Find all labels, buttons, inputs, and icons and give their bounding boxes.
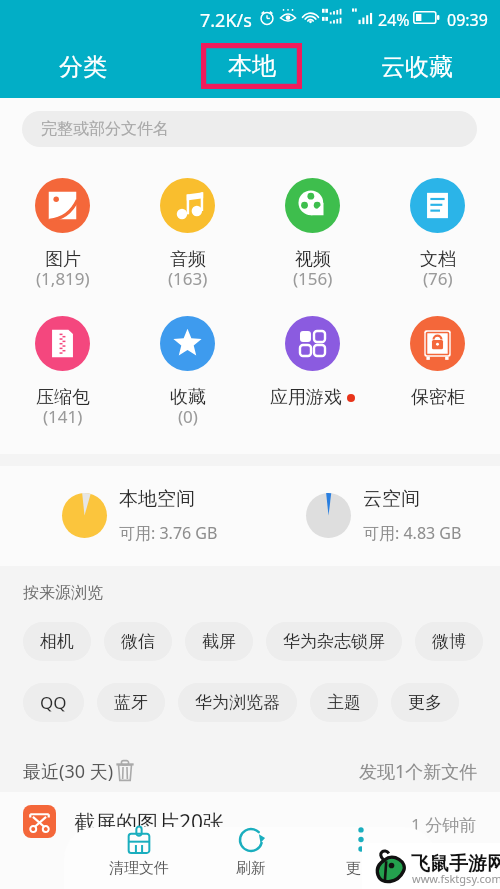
staticText: 更多 [346, 859, 376, 878]
staticText: 微信 [121, 631, 155, 652]
staticText: 本地空间 [119, 487, 195, 511]
staticText: 云空间 [363, 487, 420, 511]
staticText: www.fsktgsy.com [412, 871, 500, 886]
button[interactable]: 微信 [104, 622, 172, 661]
button[interactable]: 华为浏览器 [178, 683, 297, 722]
button[interactable]: QQ [23, 683, 84, 722]
staticText: 1 分钟前 [411, 813, 477, 836]
staticText: 云收藏 [381, 52, 453, 82]
button[interactable]: 华为杂志锁屏 [266, 622, 402, 661]
button[interactable]: 微博 [415, 622, 483, 661]
button[interactable]: 图片 [0, 178, 125, 294]
button[interactable]: 更多 [321, 826, 401, 889]
staticText: 视频 [295, 248, 331, 271]
button[interactable]: 应用游戏 [250, 316, 375, 409]
staticText: 分类 [59, 52, 107, 82]
staticText: 发现1个新文件 [359, 759, 478, 784]
staticText: 微博 [432, 631, 466, 652]
staticText: (141) [43, 405, 83, 428]
button[interactable]: 截屏 [185, 622, 253, 661]
staticText: 按来源浏览 [23, 583, 103, 603]
button[interactable]: 云收藏 [333, 36, 500, 98]
staticText: 可用: 4.83 GB [363, 522, 462, 544]
staticText: 截屏 [202, 631, 236, 652]
staticText: 主题 [327, 692, 361, 713]
staticText: 清理文件 [109, 859, 169, 878]
button[interactable]: 保密柜 [375, 316, 500, 409]
staticText: 完整或部分文件名 [41, 119, 169, 139]
staticText: 飞鼠手游网 [411, 852, 500, 876]
staticText: 华为杂志锁屏 [283, 631, 385, 652]
staticText: 09:39 [447, 9, 488, 31]
staticText: (163) [168, 267, 208, 290]
staticText: 更多 [408, 692, 442, 713]
button[interactable]: 主题 [310, 683, 378, 722]
staticText: 华为浏览器 [195, 692, 280, 713]
button[interactable]: 视频 [250, 178, 375, 294]
staticText: 保密柜 [411, 386, 465, 409]
staticText: 可用: 3.76 GB [119, 522, 218, 544]
button[interactable]: 音频 [125, 178, 250, 294]
staticText: 24% [378, 9, 410, 31]
staticText: 压缩包 [36, 386, 90, 409]
button[interactable]: 文档 [375, 178, 500, 294]
button[interactable] [23, 805, 56, 838]
button[interactable]: 相机 [23, 622, 91, 661]
staticText: 7.2K/s [200, 8, 252, 33]
button[interactable]: 压缩包 [0, 316, 125, 432]
staticText: 最近(30 天) [23, 759, 114, 784]
staticText: 蓝牙 [114, 692, 148, 713]
staticText: (1,819) [36, 267, 90, 290]
button[interactable]: 更多 [391, 683, 459, 722]
staticText: (76) [423, 267, 453, 290]
button[interactable]: 清除最近记录 [116, 760, 134, 781]
staticText: 相机 [40, 631, 74, 652]
button[interactable]: 本地 [201, 43, 302, 89]
button[interactable]: 本地空间 [62, 478, 252, 552]
button[interactable]: 刷新 [211, 826, 291, 889]
button[interactable]: 分类 [0, 36, 166, 98]
staticText: 截屏的图片20张 [74, 808, 225, 837]
staticText: 刷新 [236, 859, 266, 878]
staticText: QQ [40, 691, 67, 714]
staticText: 本地 [228, 51, 276, 81]
staticText: 音频 [170, 248, 206, 271]
staticText: 应用游戏 [270, 386, 342, 409]
button[interactable]: 清理文件 [99, 826, 179, 889]
button[interactable]: 收藏 [125, 316, 250, 432]
staticText: (156) [293, 267, 333, 290]
button[interactable]: 云空间 [306, 478, 496, 552]
button[interactable]: 完整或部分文件名 [22, 111, 477, 147]
staticText: 图片 [45, 248, 81, 271]
staticText: 收藏 [170, 386, 206, 409]
staticText: 文档 [420, 248, 456, 271]
staticText: (0) [178, 405, 198, 428]
button[interactable]: 蓝牙 [97, 683, 165, 722]
